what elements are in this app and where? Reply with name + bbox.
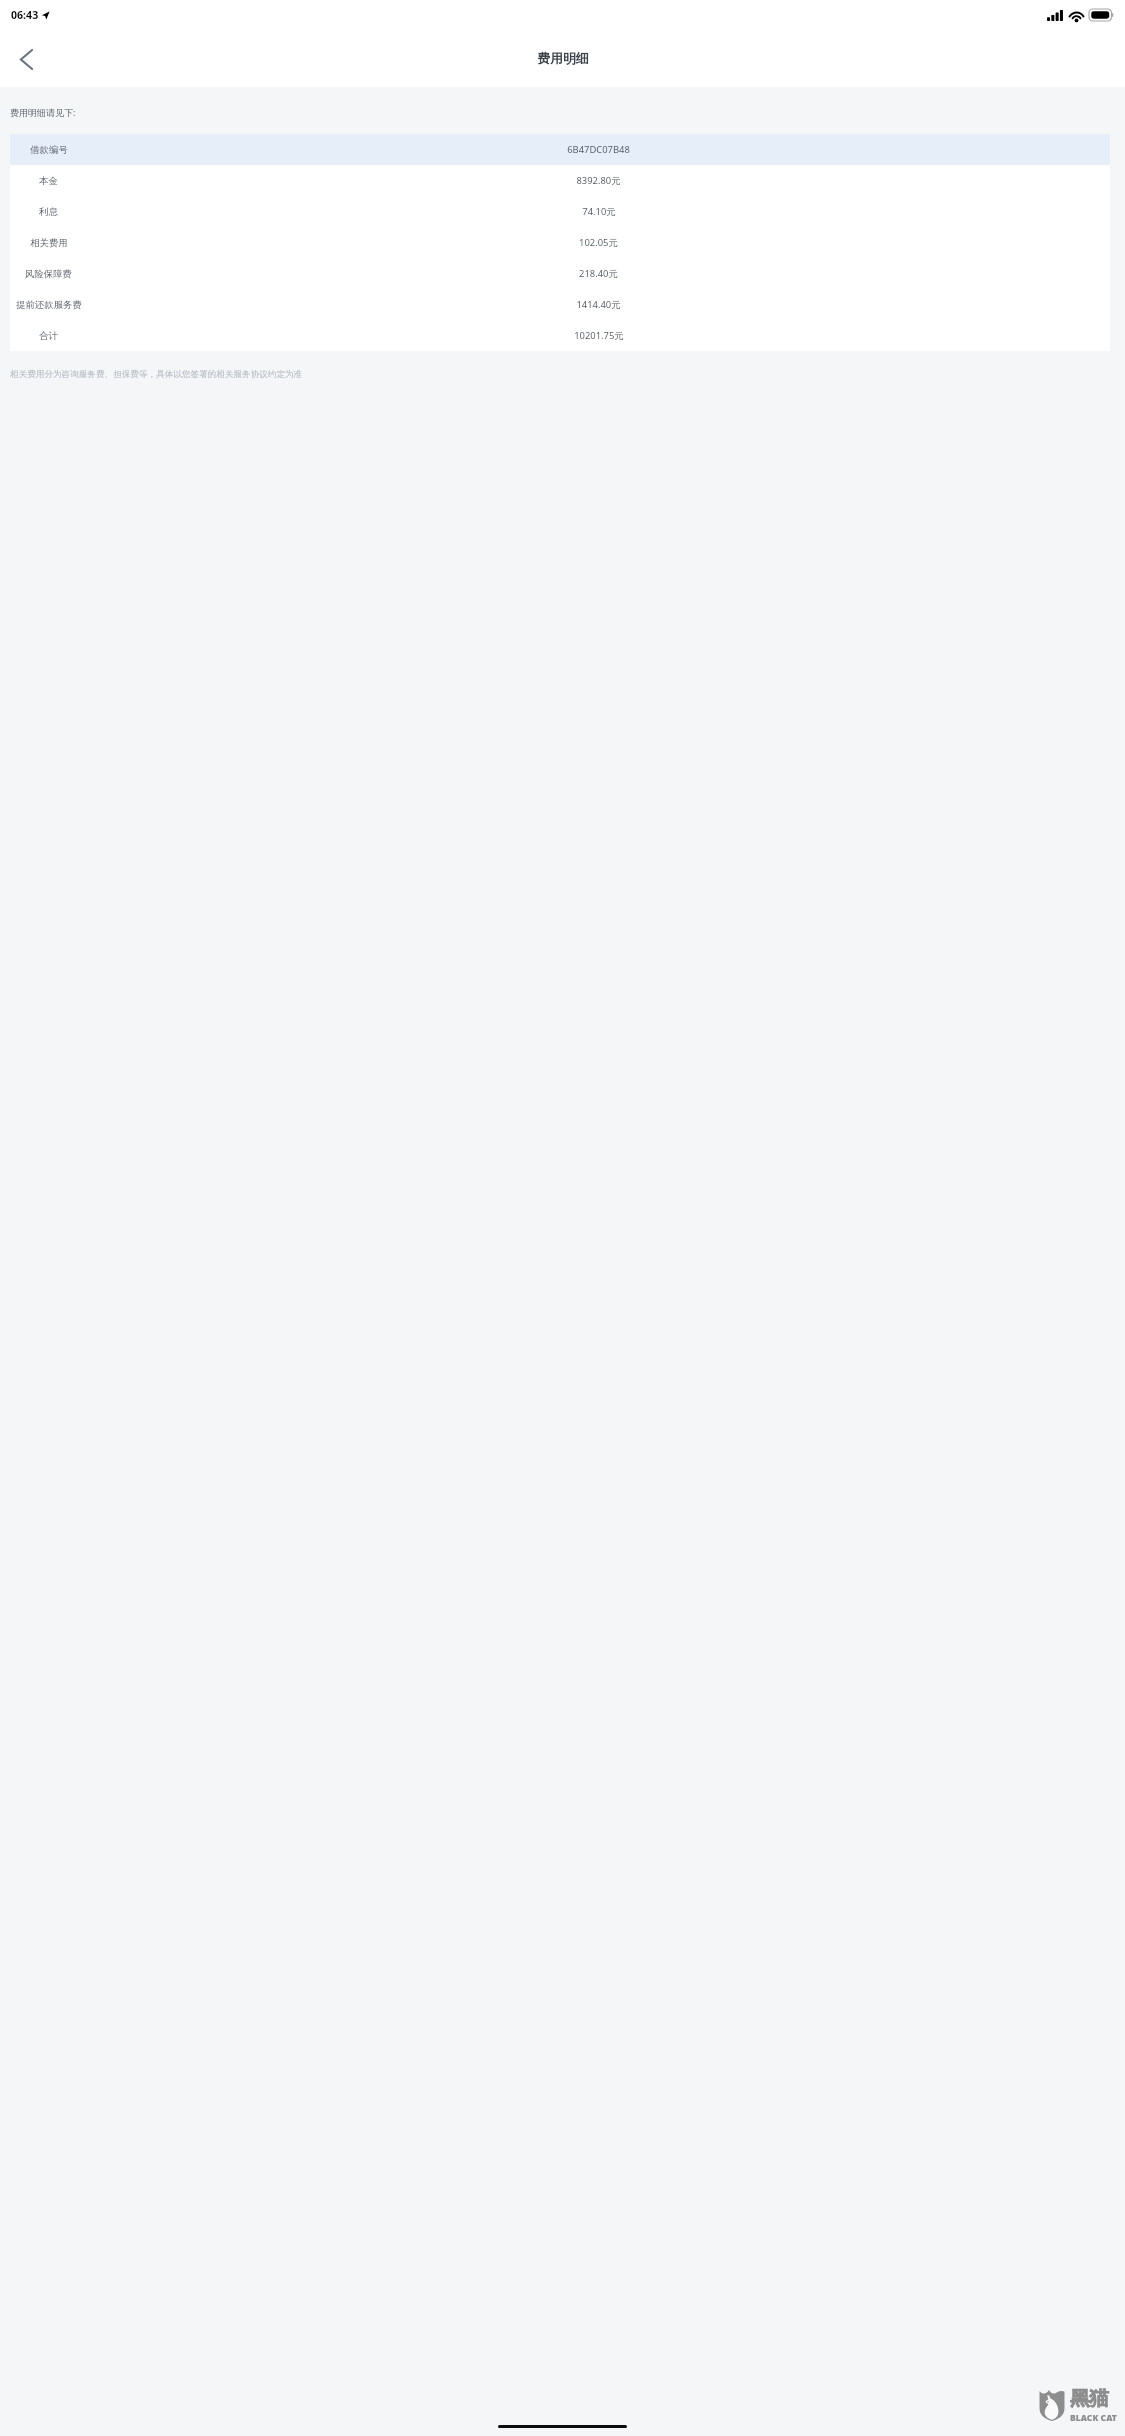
staticText: 6B47DC07B48 (567, 143, 630, 156)
staticText: 8392.80元 (576, 174, 621, 187)
staticText: 相关费用分为咨询服务费、担保费等，具体以您签署的相关服务协议约定为准 (10, 369, 303, 380)
staticText: BLACK CAT (1070, 2412, 1117, 2424)
staticText: 相关费用 (30, 237, 68, 249)
staticText: 1414.40元 (576, 298, 621, 311)
staticText: 本金 (39, 175, 58, 187)
staticText: 102.05元 (579, 236, 618, 249)
staticText: 合计 (39, 330, 58, 342)
staticText: 74.10元 (582, 205, 616, 218)
staticText: 提前还款服务费 (16, 299, 82, 311)
staticText: 费用明细请见下: (10, 106, 76, 118)
button[interactable]: Back (0, 33, 52, 85)
staticText: 06:43 (11, 8, 39, 22)
staticText: 黑猫 (1070, 2386, 1109, 2411)
staticText: 费用明细 (537, 51, 589, 67)
staticText: 利息 (39, 206, 58, 218)
staticText: 风险保障费 (25, 268, 72, 280)
staticText: 10201.75元 (574, 329, 624, 342)
staticText: 借款编号 (30, 144, 68, 156)
staticText: 218.40元 (579, 267, 618, 280)
